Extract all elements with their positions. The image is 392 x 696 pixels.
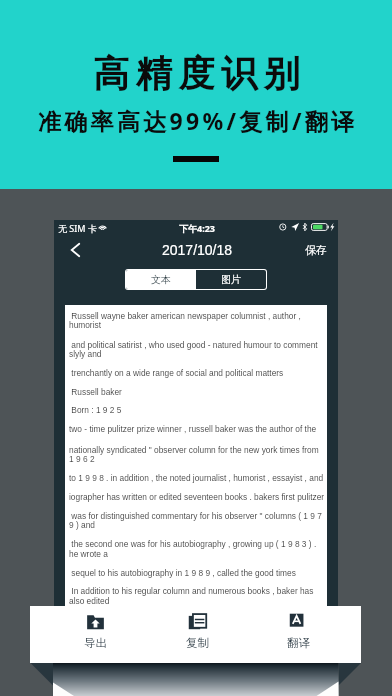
staticText: two - time pulitzer prize winner , russe… — [69, 424, 317, 433]
button[interactable]: 复制 — [163, 613, 231, 656]
staticText: 准确率高达99%/复制/翻译 — [38, 105, 358, 136]
button[interactable]: Back — [64, 239, 86, 261]
staticText: 导出 — [84, 636, 107, 650]
staticText: In addition to his regular column and nu… — [69, 586, 314, 595]
staticText: Russell baker — [69, 387, 122, 396]
staticText: also edited — [69, 596, 110, 605]
button[interactable]: 翻译 — [264, 613, 332, 656]
button[interactable]: 保存 — [305, 243, 327, 257]
staticText: humorist — [69, 320, 101, 329]
button[interactable]: 导出 — [61, 613, 129, 656]
staticText: 文本 — [151, 273, 171, 286]
staticText: 复制 — [186, 636, 209, 650]
button[interactable]: 文本 — [126, 270, 196, 289]
staticText: 1 9 6 2 — [69, 454, 95, 463]
staticText: to 1 9 9 8 . in addition , the noted jou… — [69, 473, 324, 482]
staticText: 翻译 — [287, 636, 310, 650]
staticText: and political satirist , who used good -… — [69, 340, 318, 349]
staticText: slyly and — [69, 349, 102, 358]
staticText: sequel to his autobiography in 1 9 8 9 ,… — [69, 568, 296, 577]
staticText: he wrote a — [69, 549, 108, 558]
staticText: 保存 — [305, 243, 327, 257]
staticText: 图片 — [221, 273, 241, 286]
staticText: was for distinguished commentary for his… — [69, 511, 322, 520]
button[interactable]: 图片 — [196, 270, 266, 289]
staticText: Russell wayne baker american newspaper c… — [69, 311, 301, 320]
staticText: 2017/10/18 — [162, 242, 233, 258]
staticText: nationally syndicated " observer column … — [69, 445, 319, 454]
staticText: trenchantly on a wide range of social an… — [69, 368, 284, 377]
staticText: Born : 1 9 2 5 — [69, 405, 122, 414]
staticText: 无 SIM 卡 — [58, 222, 97, 234]
staticText: the second one was for his autobiography… — [69, 539, 317, 548]
staticText: 下午4:23 — [179, 222, 215, 234]
staticText: 高精度识别 — [90, 51, 303, 96]
staticText: iographer has written or edited seventee… — [69, 492, 325, 501]
staticText: 9 ) and — [69, 520, 95, 529]
